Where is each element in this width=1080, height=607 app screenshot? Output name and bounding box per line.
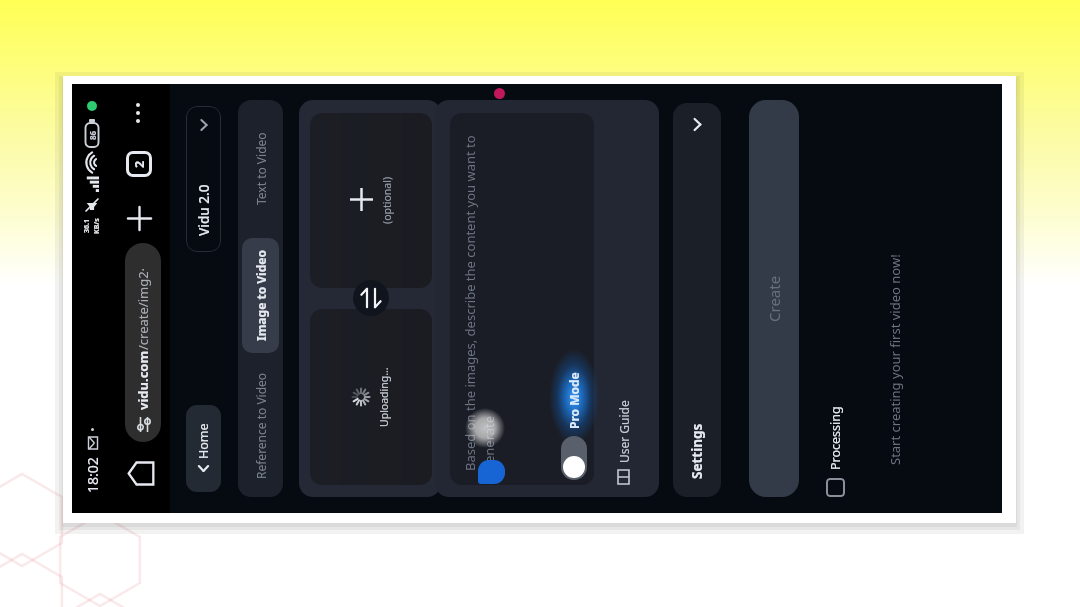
button[interactable]: Reference to Video <box>242 358 279 493</box>
staticText: Vidu 2.0 <box>195 184 213 236</box>
button[interactable]: Settings <box>673 103 721 497</box>
button[interactable]: Text to Video <box>242 104 279 233</box>
staticText: Reference to Video <box>253 372 269 479</box>
button[interactable]: Create <box>749 100 799 497</box>
button[interactable]: Uploading... <box>310 309 432 485</box>
staticText: Uploading... <box>377 367 391 427</box>
button[interactable]: Swap images <box>353 280 389 316</box>
button[interactable]: Based on the images, describe the conten… <box>450 113 594 485</box>
staticText: Text to Video <box>253 132 269 205</box>
staticText: Settings <box>688 423 706 479</box>
button[interactable]: More options <box>125 100 151 126</box>
staticText: /create/img2· <box>134 267 152 350</box>
button[interactable]: User Guide <box>612 400 636 485</box>
button[interactable]: Tabs <box>126 151 152 177</box>
button[interactable]: Home <box>186 405 221 492</box>
staticText: 36.1 <box>82 219 92 233</box>
staticText: Create <box>764 275 784 322</box>
staticText: Processing <box>827 406 844 470</box>
button[interactable]: vidu.com <box>125 243 161 442</box>
staticText: User Guide <box>616 400 632 463</box>
button[interactable]: Back <box>125 458 157 490</box>
button[interactable]: Processing <box>819 406 851 497</box>
staticText: Based on the images, describe the conten… <box>461 127 498 471</box>
staticText: 18:02 <box>83 457 102 493</box>
staticText: 2 <box>131 160 148 168</box>
staticText: Image to Video <box>253 250 269 341</box>
button[interactable]: New tab <box>123 203 155 235</box>
staticText: KB/s <box>92 218 102 234</box>
staticText: Start creating your first video now! <box>886 254 904 465</box>
staticText: (optional) <box>380 176 394 224</box>
staticText: 86 <box>87 130 98 140</box>
staticText: vidu.com <box>134 350 152 410</box>
button[interactable]: Vidu 2.0 <box>186 106 221 252</box>
button[interactable]: Pro Mode <box>556 372 592 480</box>
staticText: Pro Mode <box>566 372 582 429</box>
staticText: Home <box>195 423 212 459</box>
button[interactable]: (optional) <box>310 113 432 288</box>
button[interactable]: Image to Video <box>242 238 279 353</box>
